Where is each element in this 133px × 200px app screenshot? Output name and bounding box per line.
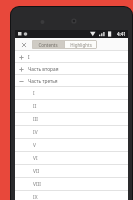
button[interactable]: V <box>15 139 128 152</box>
button[interactable]: VIII <box>15 178 128 191</box>
staticText: Contents <box>38 42 58 48</box>
staticText: Часть вторая <box>28 66 59 73</box>
button[interactable]: Highlights <box>65 40 97 49</box>
button[interactable]: Close <box>15 38 32 51</box>
button[interactable]: Expand <box>15 63 28 75</box>
staticText: IV <box>33 129 38 136</box>
button[interactable]: I <box>15 87 128 100</box>
staticText: III <box>33 116 38 123</box>
staticText: Часть третья <box>28 78 58 85</box>
button[interactable]: IX <box>15 191 128 200</box>
button[interactable]: VI <box>15 152 128 165</box>
staticText: VII <box>33 168 40 175</box>
staticText: V <box>33 142 36 149</box>
staticText: I <box>28 54 30 61</box>
staticText: Highlights <box>70 42 92 48</box>
staticText: II <box>33 103 37 110</box>
staticText: VIII <box>33 181 41 188</box>
staticText: I <box>33 90 35 97</box>
button[interactable]: IV <box>15 126 128 139</box>
button[interactable]: II <box>15 100 128 113</box>
button[interactable]: VII <box>15 165 128 178</box>
button[interactable]: Collapse <box>15 75 128 87</box>
staticText: 4:41 <box>117 31 126 37</box>
button[interactable]: Expand <box>15 63 128 75</box>
button[interactable]: Collapse <box>15 75 28 87</box>
staticText: VI <box>33 155 38 162</box>
button[interactable]: Contents <box>32 40 64 49</box>
button[interactable]: Expand <box>15 51 128 63</box>
staticText: IX <box>33 194 38 200</box>
button[interactable]: III <box>15 113 128 126</box>
button[interactable]: Expand <box>15 51 28 63</box>
